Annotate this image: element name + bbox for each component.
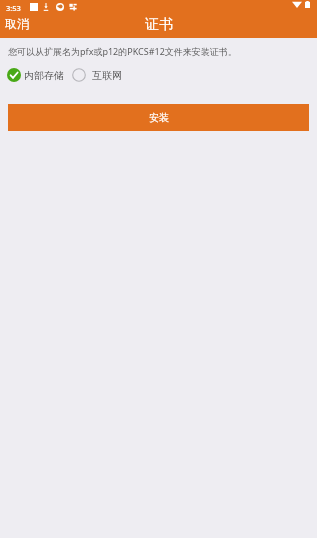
staticText: 内部存储 <box>24 69 64 82</box>
staticText: 互联网 <box>92 69 122 82</box>
button[interactable]: 取消 <box>0 14 33 38</box>
staticText: 您可以从扩展名为pfx或p12的PKCS#12文件来安装证书。 <box>8 45 237 57</box>
staticText: 取消 <box>5 16 29 31</box>
staticText: 证书 <box>145 16 173 34</box>
staticText: 3:53 <box>6 3 21 13</box>
button[interactable]: 内部存储 <box>7 66 64 84</box>
staticText: 安装 <box>149 111 169 124</box>
button[interactable]: 安装 <box>8 104 309 131</box>
button[interactable]: 互联网 <box>72 66 122 84</box>
